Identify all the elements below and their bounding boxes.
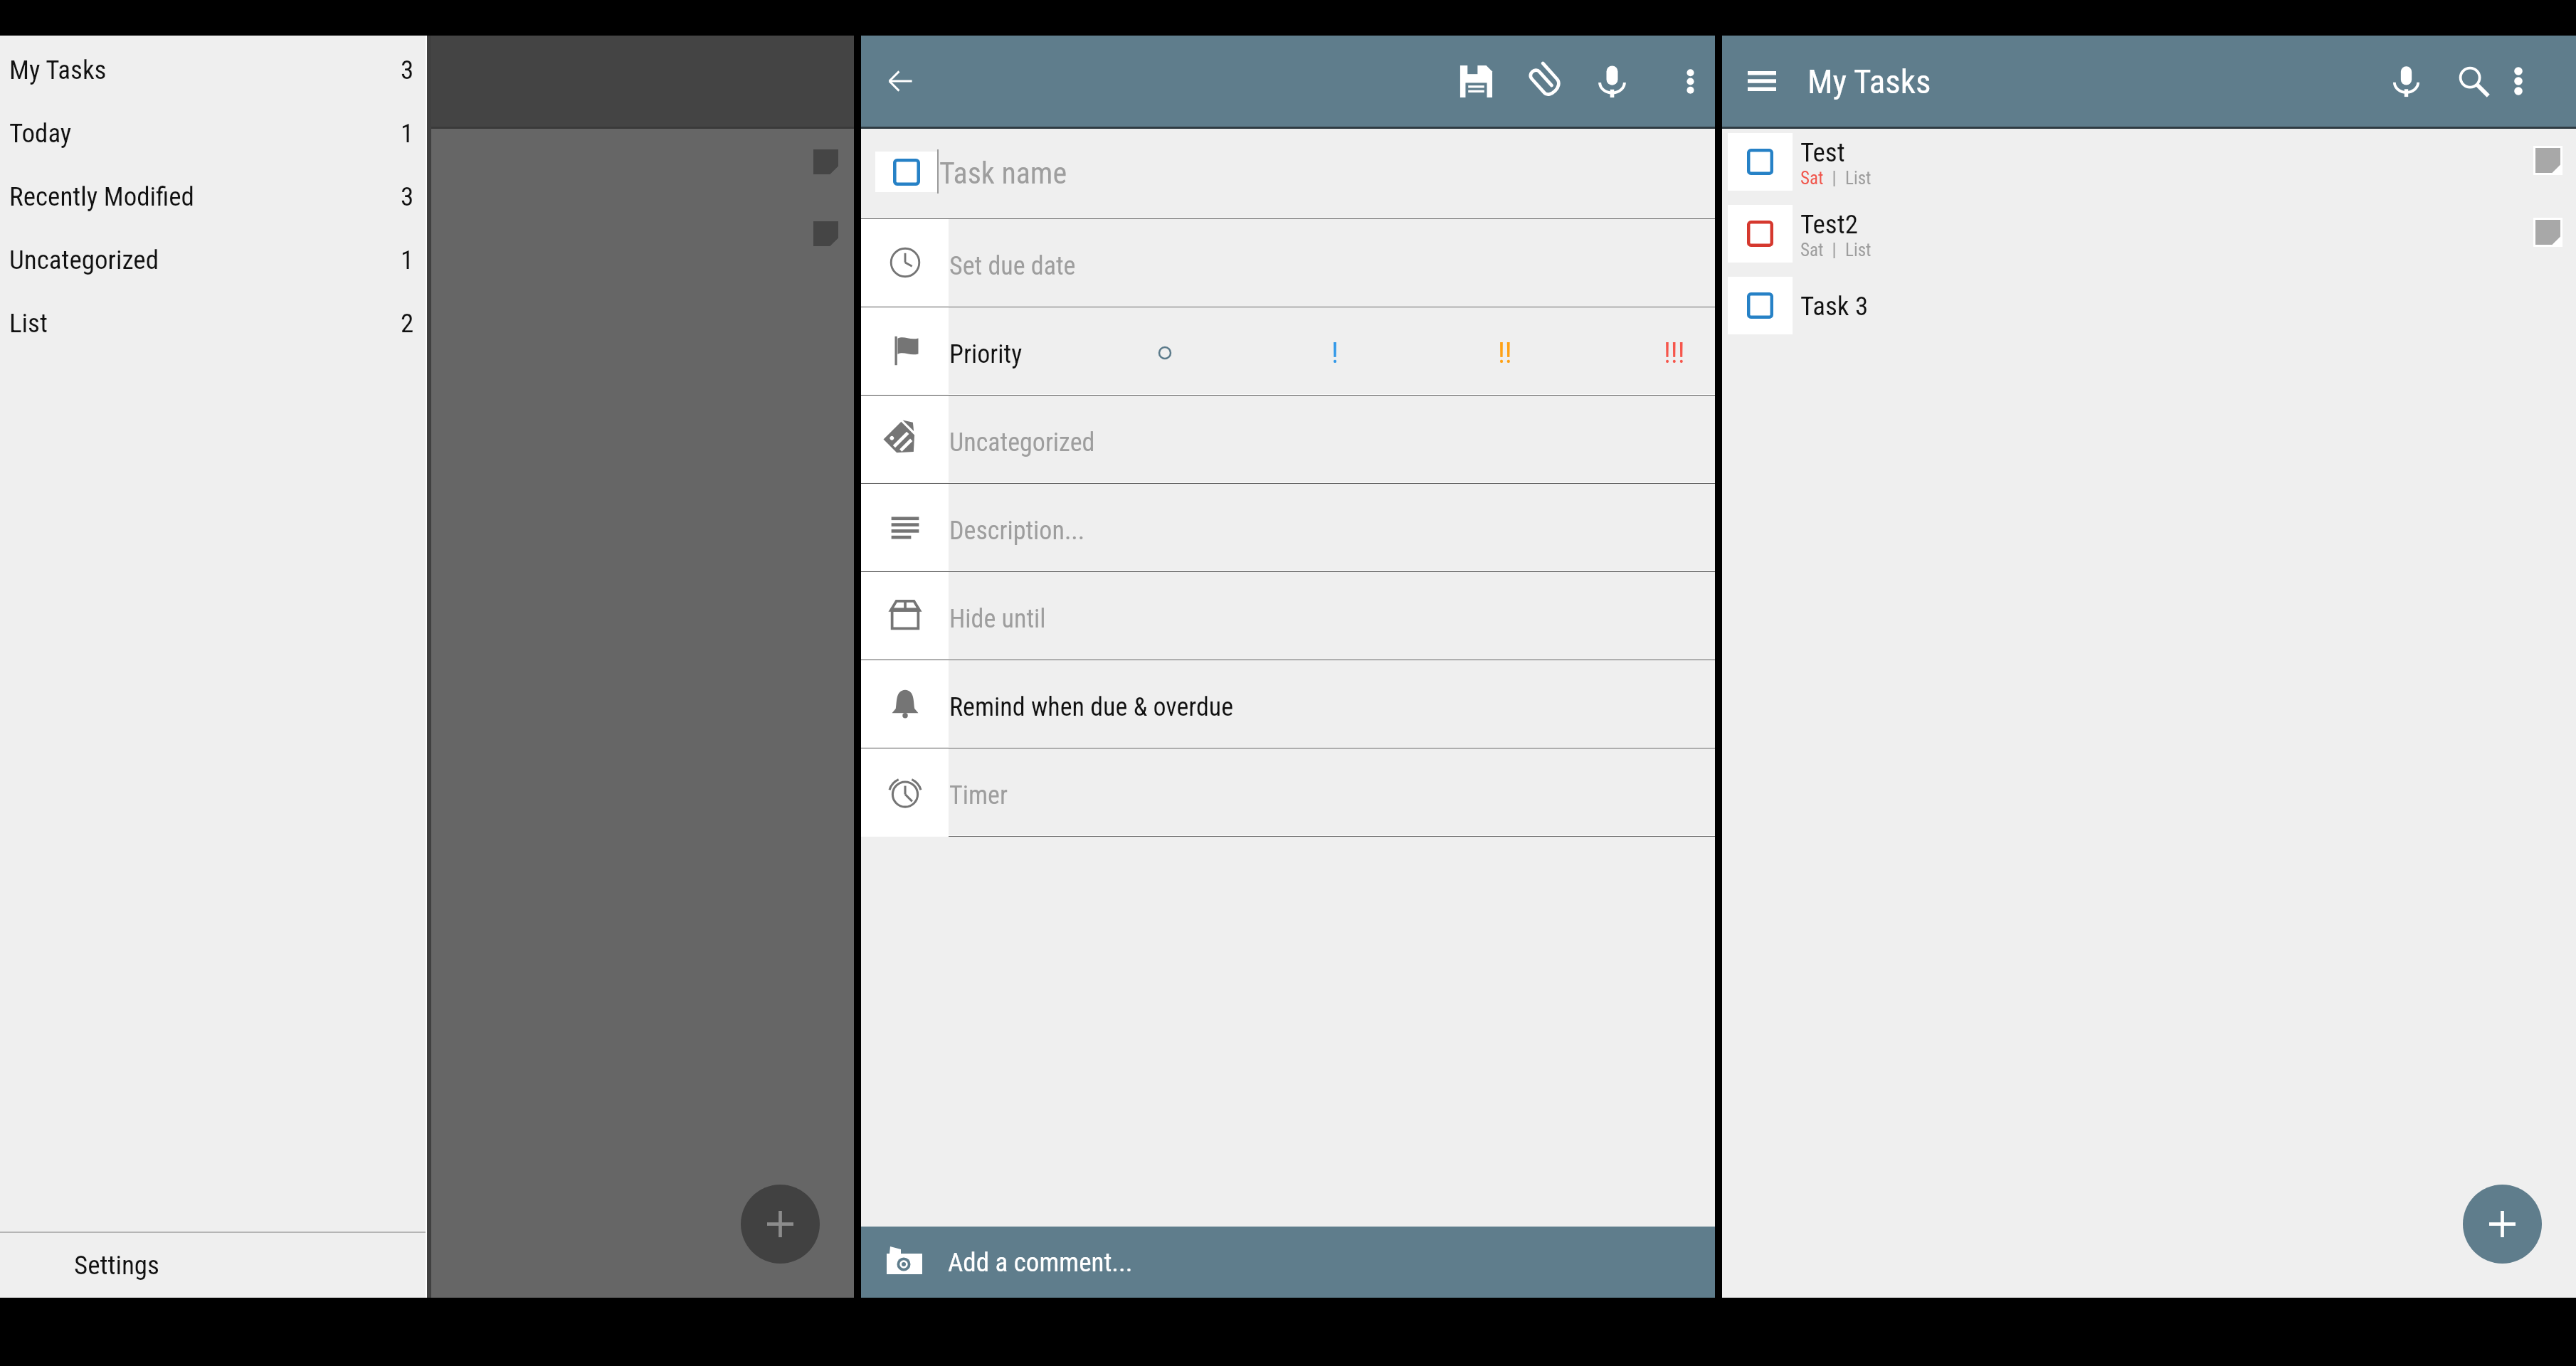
staticText: !!!: [1664, 337, 1685, 370]
staticText: Remind when due & overdue: [949, 692, 1234, 722]
staticText: Add a comment...: [948, 1247, 1133, 1278]
staticText: |: [1824, 240, 1845, 260]
staticText: 3: [401, 55, 414, 85]
button[interactable]: Hide until: [861, 572, 1715, 659]
button[interactable]: Mark task complete: [875, 152, 937, 192]
staticText: Sat: [1800, 168, 1824, 189]
button[interactable]: Voice input: [2385, 36, 2427, 127]
button[interactable]: Mark task complete: [861, 129, 1715, 218]
staticText: Priority: [949, 339, 1023, 369]
staticText: Uncategorized: [9, 245, 159, 275]
button[interactable]: Mark Test complete: [1728, 133, 1793, 191]
button[interactable]: Description...: [861, 484, 1715, 571]
staticText: Settings: [74, 1250, 159, 1281]
button[interactable]: More options: [1669, 36, 1711, 127]
button[interactable]: More options: [2497, 36, 2540, 127]
button[interactable]: List: [0, 292, 426, 355]
staticText: 1: [401, 118, 414, 149]
button[interactable]: Recently Modified: [0, 165, 426, 228]
staticText: Uncategorized: [949, 428, 1095, 457]
button[interactable]: Today: [0, 102, 426, 165]
button[interactable]: High priority: [1632, 307, 1717, 394]
staticText: List: [1845, 240, 1872, 260]
staticText: Set due date: [949, 251, 1076, 281]
staticText: Today: [9, 118, 72, 149]
staticText: Test: [1800, 137, 1845, 168]
button[interactable]: Search: [2452, 36, 2495, 127]
button[interactable]: Back: [861, 36, 940, 127]
button[interactable]: Low priority: [1292, 307, 1378, 394]
staticText: My Tasks: [9, 55, 107, 85]
staticText: 2: [401, 308, 414, 339]
staticText: Hide until: [949, 604, 1046, 634]
staticText: List: [1845, 168, 1872, 189]
button[interactable]: Medium priority: [1462, 307, 1548, 394]
staticText: |: [1824, 168, 1845, 189]
button[interactable]: Mark Test complete: [1722, 129, 2576, 201]
button[interactable]: Add a comment...: [861, 1227, 1715, 1298]
button[interactable]: Add task: [741, 1185, 820, 1264]
staticText: 3: [401, 181, 414, 212]
button[interactable]: Mark Task 3 complete: [1728, 277, 1793, 334]
staticText: !: [1331, 337, 1339, 370]
button[interactable]: Timer: [861, 748, 1715, 835]
button[interactable]: Open navigation drawer: [1722, 36, 1801, 127]
button[interactable]: Voice input: [1590, 36, 1633, 127]
staticText: Test2: [1800, 209, 1858, 240]
staticText: Recently Modified: [9, 181, 194, 212]
staticText: Sat: [1800, 240, 1824, 260]
button[interactable]: Add task: [2463, 1185, 2542, 1264]
button[interactable]: Save: [1455, 36, 1497, 127]
button[interactable]: Mark Test2 complete: [1728, 205, 1793, 263]
staticText: Description...: [949, 516, 1085, 546]
button[interactable]: Uncategorized: [0, 228, 426, 292]
button[interactable]: Remind when due & overdue: [861, 660, 1715, 747]
button[interactable]: Attach file: [1521, 36, 1564, 127]
button[interactable]: Uncategorized: [861, 396, 1715, 482]
button[interactable]: Lowest priority: [1122, 307, 1208, 394]
staticText: Task name: [939, 156, 1067, 191]
button[interactable]: Settings: [0, 1233, 426, 1298]
staticText: !!: [1498, 337, 1512, 370]
staticText: My Tasks: [1807, 62, 1931, 101]
staticText: 1: [401, 245, 414, 275]
button[interactable]: Mark Test2 complete: [1722, 201, 2576, 272]
staticText: List: [9, 308, 48, 339]
staticText: Task 3: [1800, 291, 1869, 322]
button[interactable]: Set due date: [861, 219, 1715, 306]
button[interactable]: Mark Task 3 complete: [1722, 272, 2576, 344]
button[interactable]: My Tasks: [0, 38, 426, 102]
staticText: Timer: [949, 780, 1008, 810]
